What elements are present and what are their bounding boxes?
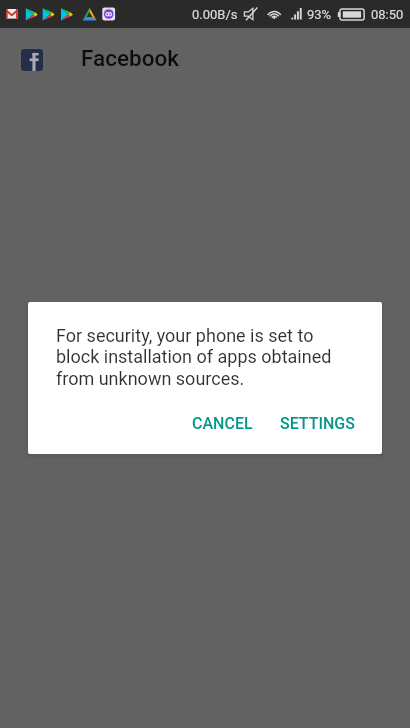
- staticText: 93%: [307, 7, 332, 22]
- staticText: CANCEL: [192, 414, 253, 433]
- staticText: SETTINGS: [280, 414, 355, 433]
- staticText: For security, your phone is set to block…: [56, 325, 356, 390]
- staticText: 0.00B/s: [192, 7, 238, 22]
- staticText: 08:50: [371, 7, 404, 22]
- staticText: Facebook: [81, 45, 180, 71]
- button[interactable]: CANCEL: [184, 408, 261, 439]
- button[interactable]: SETTINGS: [272, 408, 363, 439]
